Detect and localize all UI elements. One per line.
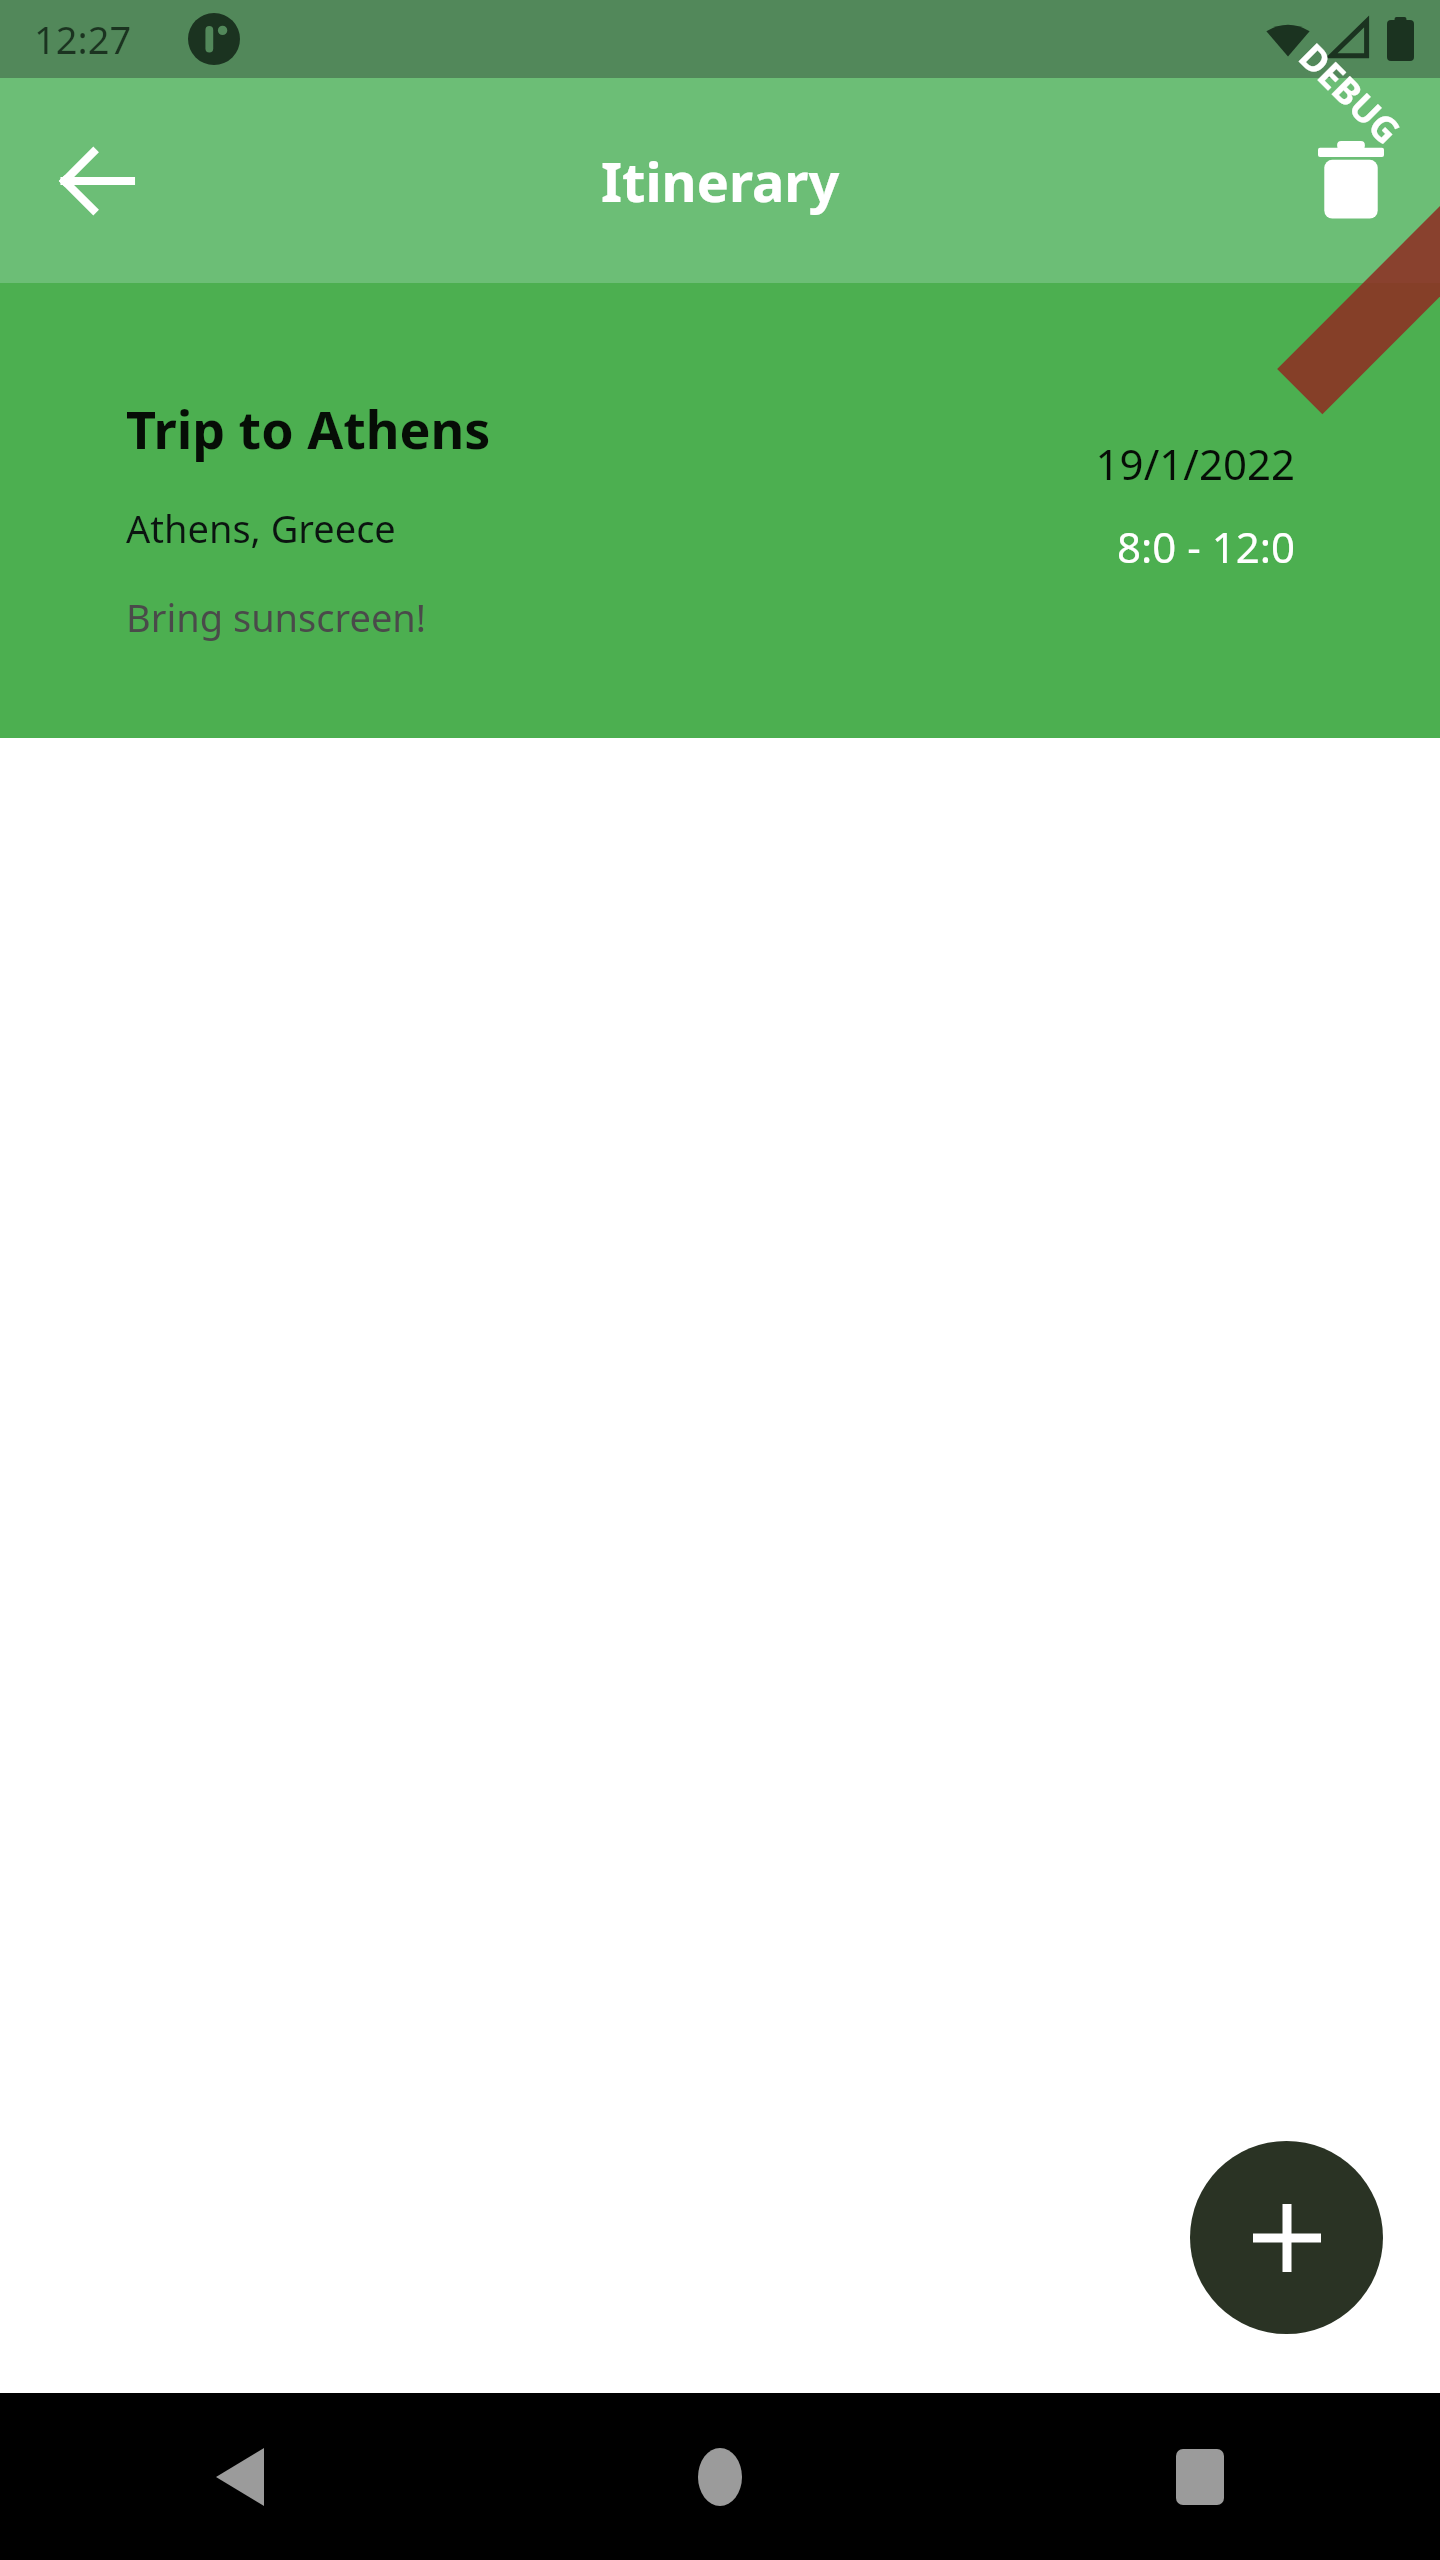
button[interactable]: Trip to Athens — [0, 283, 1440, 738]
staticText: Trip to Athens — [126, 393, 491, 464]
staticText: 12:27 — [34, 13, 132, 65]
staticText: 19/1/2022 — [1095, 435, 1295, 492]
button[interactable]: Back — [0, 2393, 480, 2560]
button[interactable]: Delete — [1280, 110, 1422, 252]
button[interactable]: Home — [480, 2393, 960, 2560]
button[interactable]: Recent apps — [960, 2393, 1440, 2560]
staticText: Itinerary — [601, 144, 840, 218]
staticText: Bring sunscreen! — [126, 591, 427, 643]
staticText: 8:0 - 12:0 — [1117, 518, 1295, 575]
button[interactable]: Back — [26, 110, 168, 252]
staticText: Athens, Greece — [126, 502, 396, 554]
staticText: DEBUG — [1289, 32, 1411, 155]
button[interactable]: Add itinerary item — [1190, 2141, 1383, 2334]
